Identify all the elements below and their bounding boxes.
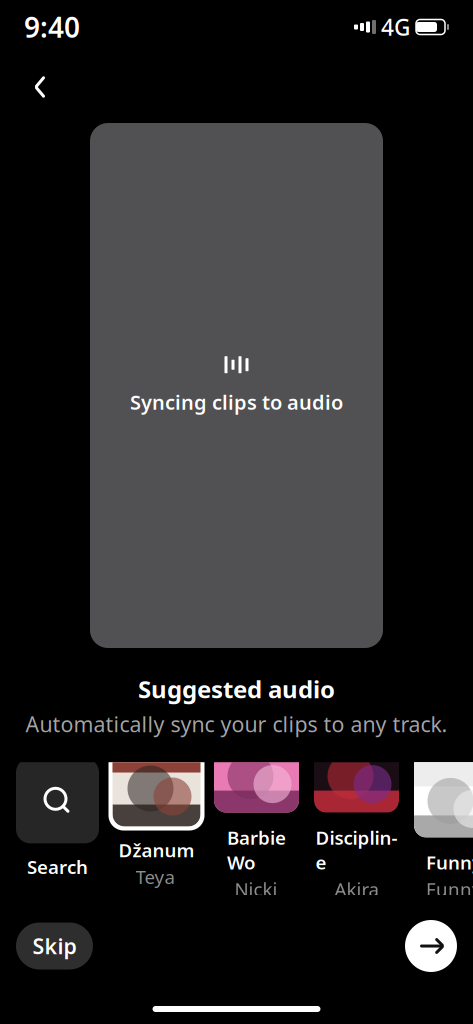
staticText: 4G bbox=[381, 12, 410, 42]
button[interactable]: Skip bbox=[16, 922, 93, 969]
button[interactable]: Discipline bbox=[314, 762, 399, 894]
staticText: Discipline bbox=[315, 825, 397, 875]
button[interactable]: Funny bbox=[414, 762, 473, 894]
staticText: Suggested audio bbox=[138, 673, 335, 705]
button[interactable]: Search bbox=[16, 762, 99, 894]
button[interactable]: Džanum bbox=[114, 762, 199, 894]
staticText: Automatically sync your clips to any tra… bbox=[25, 710, 447, 738]
button[interactable]: Back bbox=[17, 64, 63, 110]
staticText: Akira The bbox=[334, 877, 378, 926]
button[interactable]: Barbie Wo bbox=[214, 762, 299, 894]
staticText: Funny bbox=[426, 877, 473, 901]
staticText: Barbie Wo bbox=[227, 825, 286, 875]
staticText: Nicki Mina bbox=[234, 877, 278, 926]
staticText: Teya Dora bbox=[135, 864, 177, 914]
staticText: Funny bbox=[426, 850, 473, 875]
staticText: 9:40 bbox=[24, 8, 80, 46]
staticText: Skip bbox=[32, 932, 76, 960]
button[interactable]: Next bbox=[405, 920, 457, 972]
staticText: Syncing clips to audio bbox=[130, 389, 343, 415]
staticText: Džanum bbox=[118, 837, 194, 862]
staticText: Search bbox=[27, 854, 88, 879]
